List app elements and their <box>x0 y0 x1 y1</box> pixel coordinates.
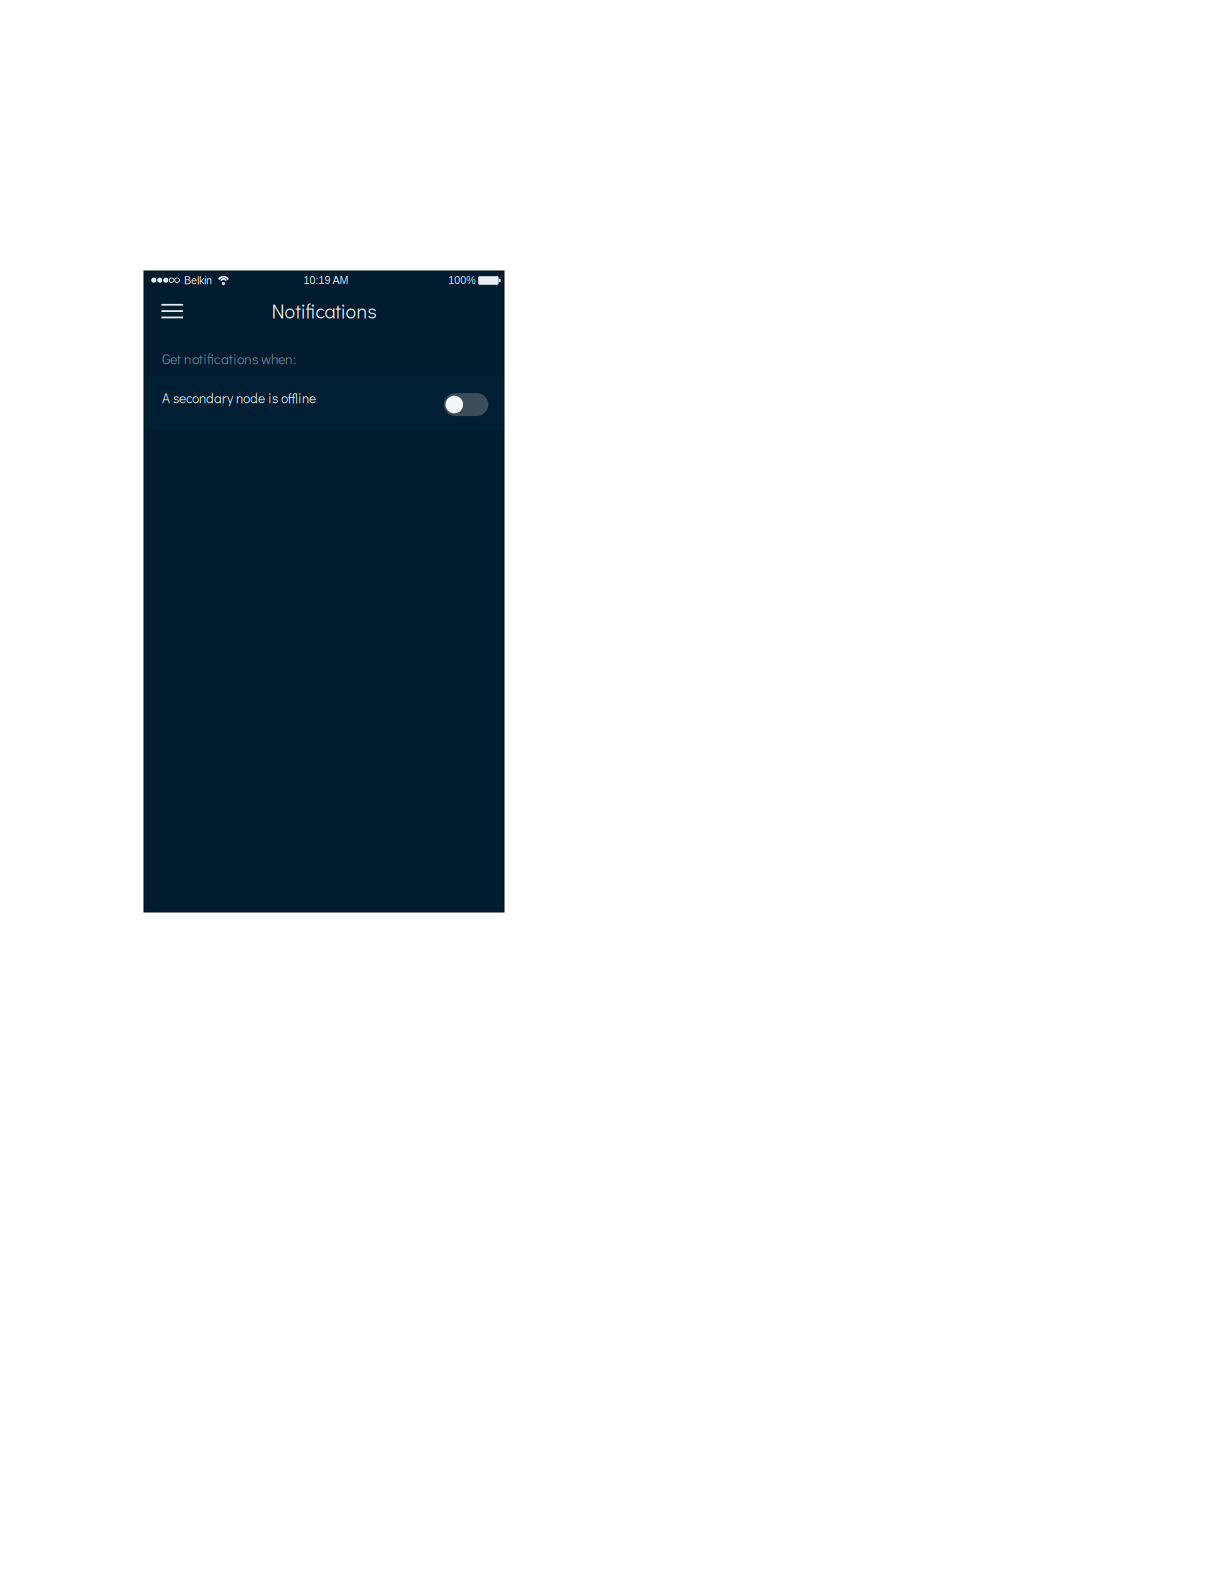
button[interactable]: Menu <box>151 290 193 332</box>
staticText: Get notifications when: <box>162 350 296 368</box>
staticText: Notifications <box>271 298 376 324</box>
staticText: 100% <box>448 274 475 286</box>
staticText: 10:19 AM <box>303 274 348 286</box>
staticText: Belkin <box>184 275 212 286</box>
button[interactable]: A secondary node is offline <box>144 376 504 430</box>
staticText: A secondary node is offline <box>162 389 316 407</box>
